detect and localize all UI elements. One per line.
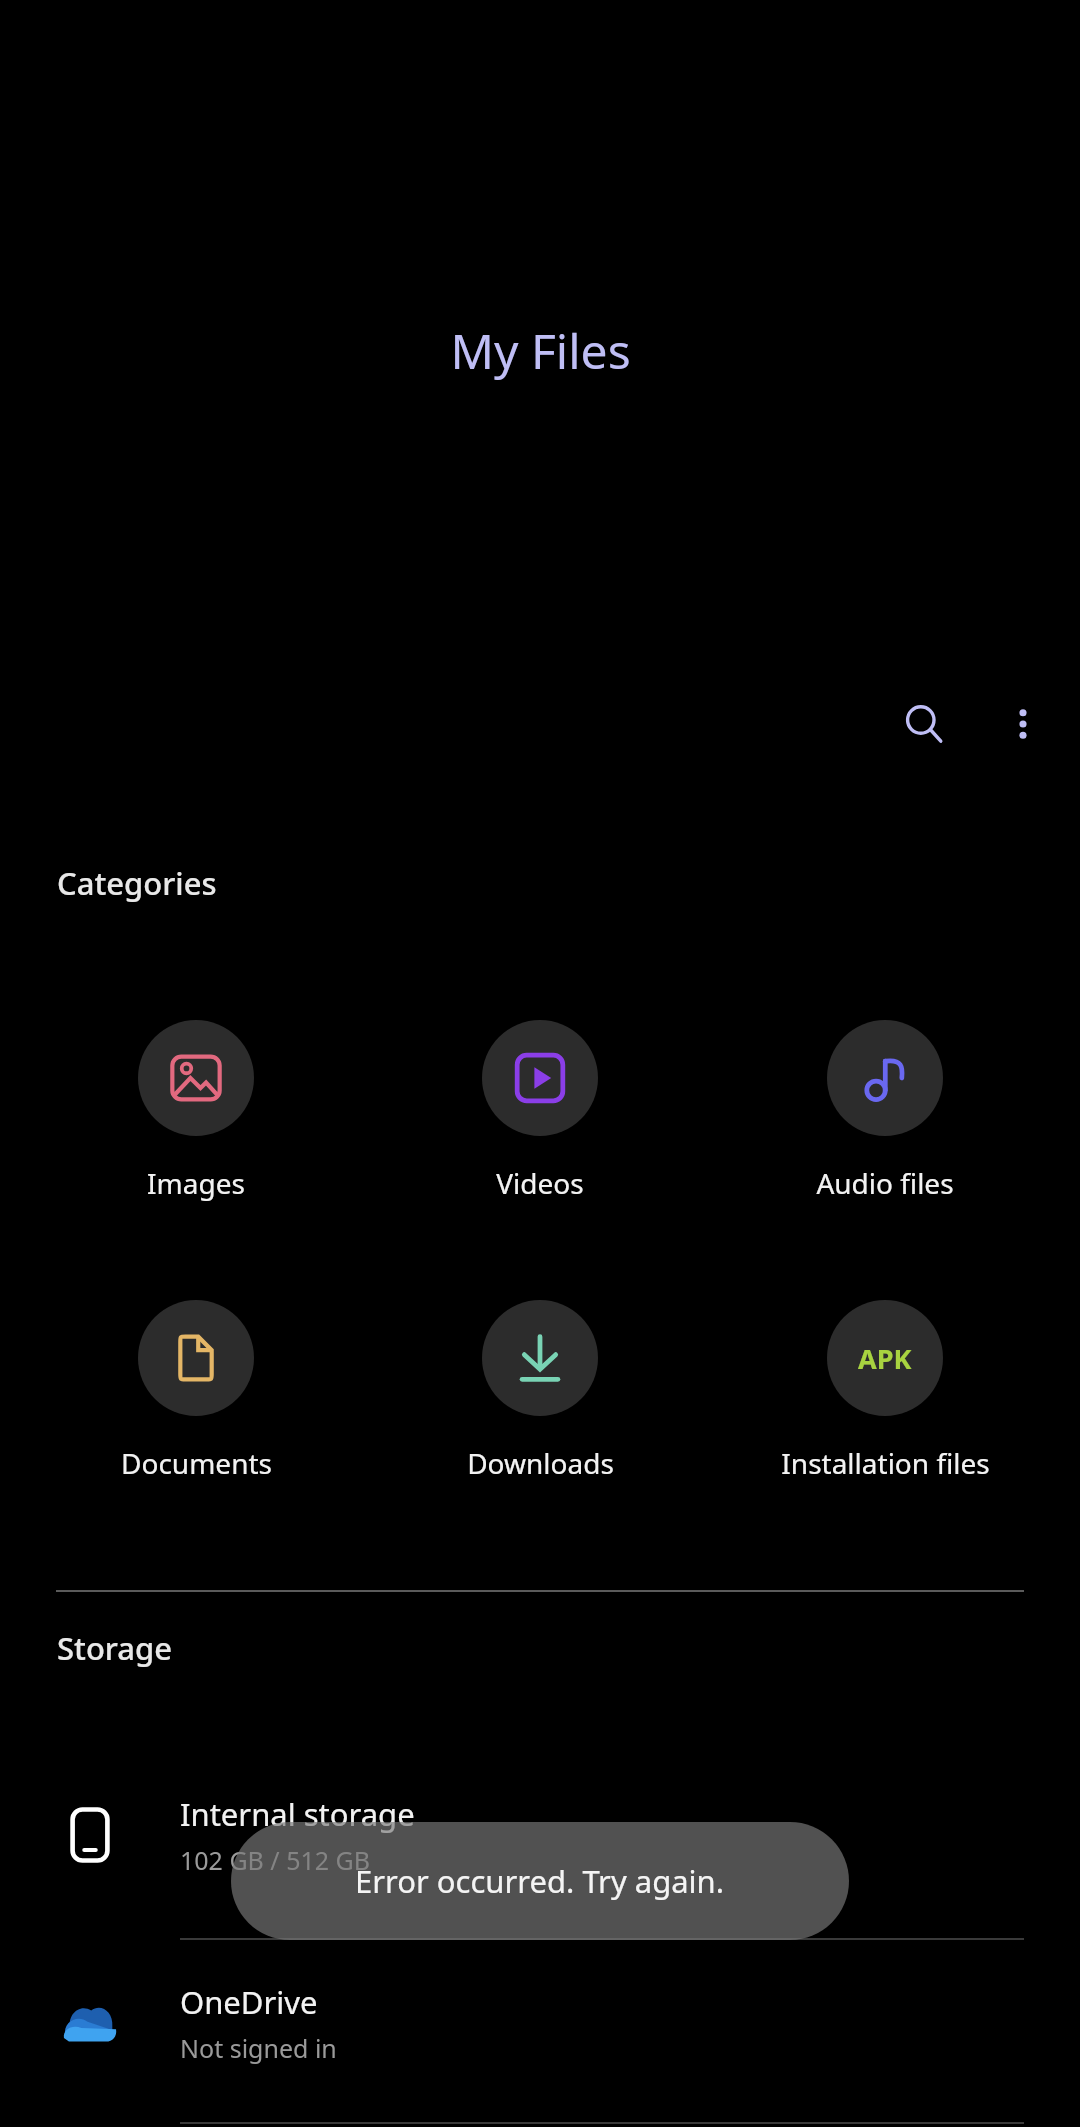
button[interactable]: Videos bbox=[375, 1020, 705, 1202]
staticText: Not signed in bbox=[180, 2031, 337, 2065]
button[interactable]: Search bbox=[888, 688, 960, 760]
staticText: Videos bbox=[496, 1164, 584, 1202]
button[interactable]: Images bbox=[31, 1020, 361, 1202]
staticText: OneDrive bbox=[180, 1981, 318, 2023]
staticText: Storage bbox=[57, 1627, 173, 1669]
staticText: My Files bbox=[450, 318, 631, 383]
staticText: Error occurred. Try again. bbox=[355, 1860, 725, 1902]
staticText: Categories bbox=[57, 862, 217, 904]
button[interactable]: Documents bbox=[31, 1300, 361, 1482]
staticText: 102 GB / 512 GB bbox=[180, 1843, 371, 1877]
button[interactable]: Downloads bbox=[375, 1300, 705, 1482]
staticText: Audio files bbox=[816, 1164, 954, 1202]
button[interactable]: More options bbox=[988, 689, 1058, 759]
staticText: Downloads bbox=[467, 1444, 614, 1482]
button[interactable]: Internal storage bbox=[0, 1760, 1080, 1910]
button[interactable]: Audio files bbox=[720, 1020, 1050, 1202]
button[interactable]: OneDrive bbox=[0, 1948, 1080, 2098]
staticText: APK bbox=[858, 1340, 912, 1377]
staticText: Documents bbox=[121, 1444, 272, 1482]
staticText: Installation files bbox=[781, 1444, 990, 1482]
button[interactable]: APK bbox=[720, 1300, 1050, 1482]
staticText: Images bbox=[147, 1164, 245, 1202]
staticText: Internal storage bbox=[180, 1793, 415, 1835]
